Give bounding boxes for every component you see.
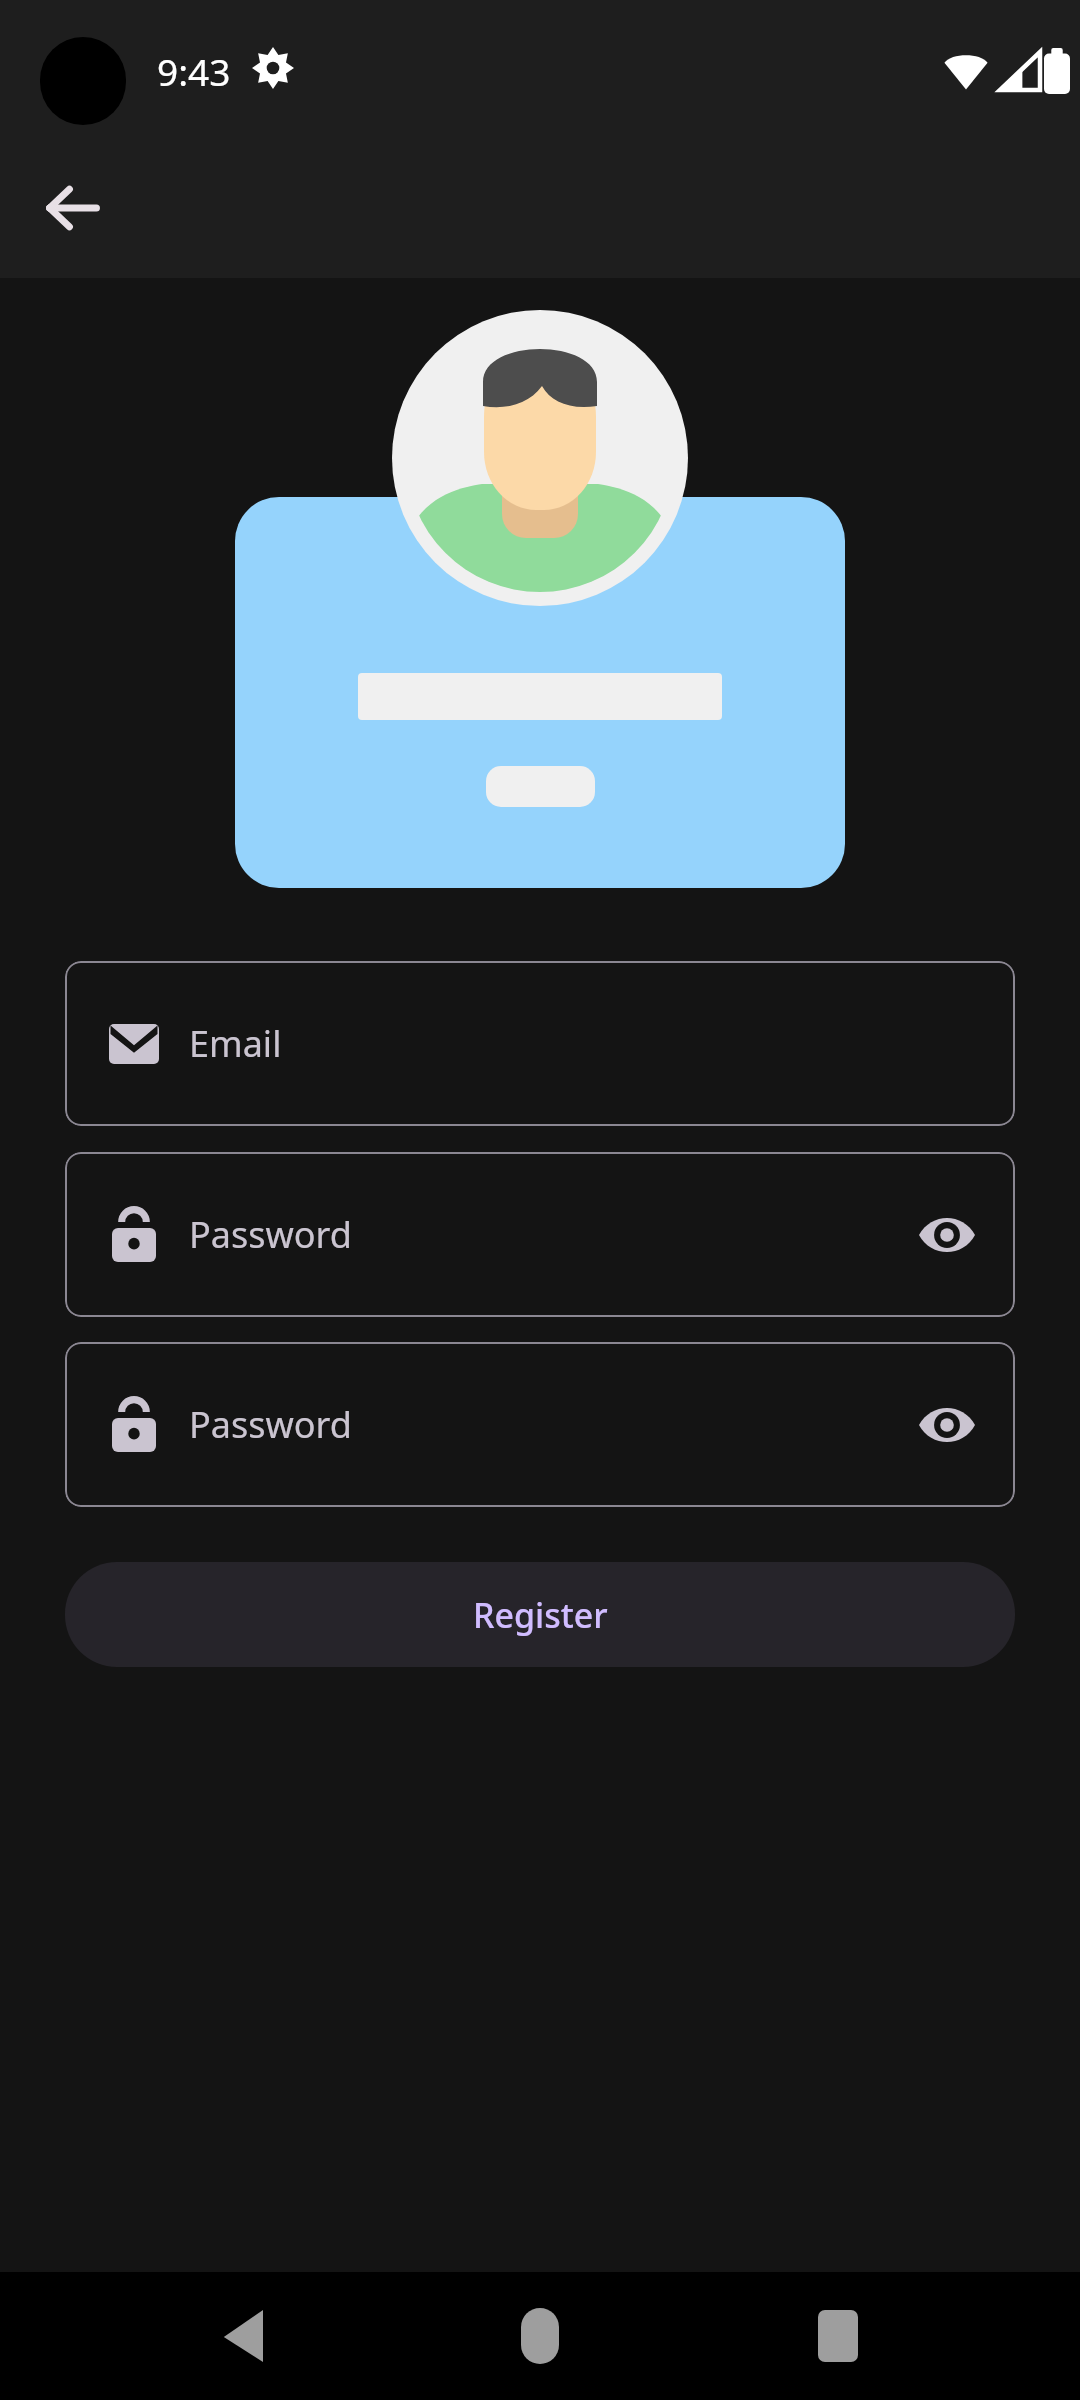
staticText: Password	[189, 1400, 352, 1449]
button[interactable]: Password	[65, 1342, 1015, 1507]
button[interactable]: Register	[65, 1562, 1015, 1667]
button[interactable]: Email	[65, 961, 1015, 1126]
staticText: Email	[189, 1019, 282, 1068]
button[interactable]: Back	[188, 2281, 298, 2391]
button[interactable]: Settings	[252, 47, 294, 89]
staticText: Password	[189, 1210, 352, 1259]
staticText: 9:43	[157, 46, 231, 96]
button[interactable]: Show password	[909, 1387, 985, 1463]
button[interactable]: Password	[65, 1152, 1015, 1317]
staticText: Register	[473, 1592, 608, 1638]
button[interactable]: Back	[24, 160, 120, 256]
button[interactable]: Show password	[909, 1197, 985, 1273]
button[interactable]: Recent apps	[783, 2281, 893, 2391]
button[interactable]: Home	[485, 2281, 595, 2391]
